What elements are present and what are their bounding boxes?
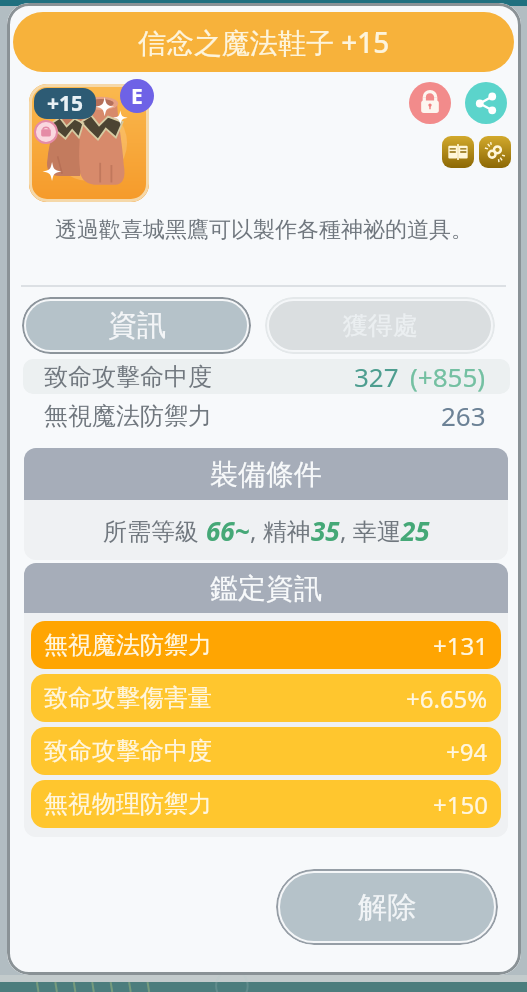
staticText: 裝備條件 [210,457,322,492]
staticText: +94 [446,735,488,768]
staticText: 致命攻擊命中度 [44,736,212,766]
staticText: 無視魔法防禦力 [44,630,212,660]
staticText: +6.65% [406,682,488,715]
staticText: +15 [47,89,84,118]
button[interactable]: Link [479,136,511,168]
staticText: 致命攻擊傷害量 [44,683,212,713]
staticText: 鑑定資訊 [210,571,322,606]
staticText: 無視物理防禦力 [44,789,212,819]
staticText: 263 [441,398,486,433]
staticText: , 精神 [250,514,311,547]
button[interactable]: 無視物理防禦力 [31,780,501,828]
button[interactable]: Share [465,82,507,124]
staticText: 透過歡喜城黑鷹可以製作各種神祕的道具。 [55,216,473,244]
staticText: (+855) [410,359,486,394]
staticText: 25 [401,513,430,548]
staticText: 獲得處 [343,310,418,341]
staticText: , 幸運 [340,514,401,547]
staticText: +150 [433,788,488,821]
staticText: +131 [433,629,488,662]
button[interactable]: 獲得處 [265,297,495,354]
staticText: 327 [354,359,399,394]
staticText: 致命攻擊命中度 [44,362,212,392]
staticText: 信念之魔法鞋子 +15 [138,23,390,61]
staticText: 解除 [358,889,416,926]
button[interactable]: 解除 [276,869,498,945]
staticText: 35 [311,513,340,548]
button[interactable]: 致命攻擊命中度 [31,727,501,775]
button[interactable]: Enchant [442,136,474,168]
button[interactable]: Lock [409,82,451,124]
staticText: 所需等級 [103,514,206,547]
button[interactable]: 致命攻擊傷害量 [31,674,501,722]
button[interactable]: 資訊 [22,297,251,354]
staticText: 66~ [206,513,250,548]
staticText: 無視魔法防禦力 [44,401,212,431]
staticText: 資訊 [108,307,166,344]
button[interactable]: 無視魔法防禦力 [31,621,501,669]
staticText: E [131,82,143,111]
